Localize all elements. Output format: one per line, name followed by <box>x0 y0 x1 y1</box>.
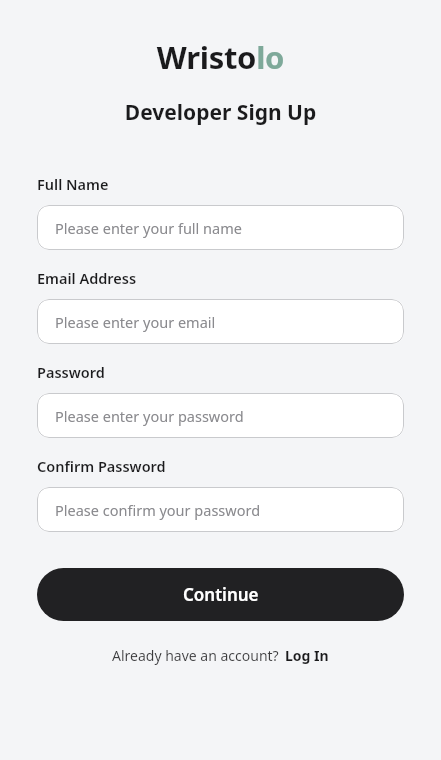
button[interactable]: Log In <box>285 646 329 665</box>
staticText: Developer Sign Up <box>37 98 404 127</box>
button[interactable]: Please enter your email <box>37 299 404 344</box>
staticText: Confirm Password <box>37 456 166 476</box>
staticText: Log In <box>285 646 329 665</box>
staticText: Password <box>37 362 105 382</box>
button[interactable]: Please confirm your password <box>37 487 404 532</box>
button[interactable]: Continue <box>37 568 404 621</box>
staticText: Please enter your full name <box>55 218 242 238</box>
staticText: Please enter your password <box>55 406 244 426</box>
staticText: Continue <box>183 583 259 606</box>
button[interactable]: Please enter your password <box>37 393 404 438</box>
staticText: Please confirm your password <box>55 500 261 520</box>
staticText: Already have an account? <box>112 646 279 665</box>
staticText: Please enter your email <box>55 312 216 332</box>
staticText: Wristolo <box>37 36 404 78</box>
button[interactable]: Please enter your full name <box>37 205 404 250</box>
staticText: Email Address <box>37 268 137 288</box>
staticText: Full Name <box>37 174 109 194</box>
